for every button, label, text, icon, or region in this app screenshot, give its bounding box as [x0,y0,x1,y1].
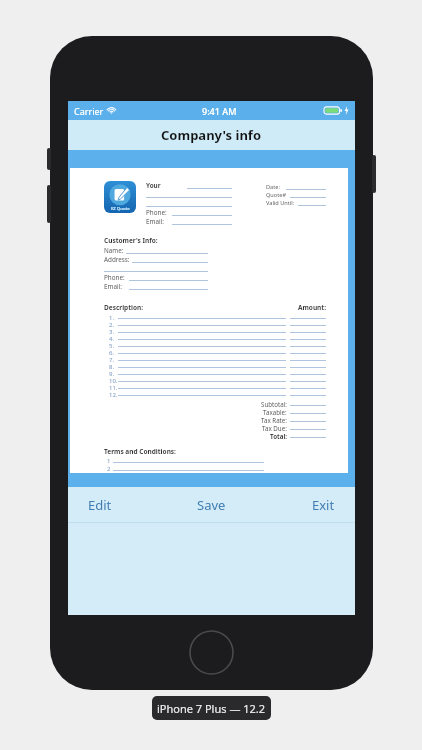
staticText: 2. [109,321,115,328]
staticText: Customer's Info: [104,236,158,245]
staticText: EZ Quote [111,206,130,212]
staticText: Tax Rate: [261,416,287,424]
staticText: 2 [107,465,111,473]
staticText: Name: [104,246,124,255]
button[interactable]: Edit [68,487,163,523]
staticText: Tax Due: [262,424,287,432]
staticText: Email: [104,282,122,291]
staticText: Save [197,496,226,514]
staticText: Taxable: [263,408,287,416]
staticText: Exit [312,496,335,514]
button[interactable]: Exit [259,487,355,523]
staticText: 12. [109,391,118,398]
staticText: Total: [270,432,287,440]
staticText: Phone: [104,273,125,282]
staticText: 4. [109,335,115,342]
staticText: Company's info [161,126,262,144]
staticText: 10. [109,377,118,384]
staticText: 3. [109,328,115,335]
staticText: Valid Until: [266,199,295,207]
staticText: 5. [109,342,115,349]
staticText: Description: [104,303,144,312]
staticText: Subtotal: [261,400,287,408]
button[interactable]: Home [189,630,234,675]
staticText: 8. [109,363,115,370]
staticText: Email: [146,217,164,226]
staticText: iPhone 7 Plus — 12.2 [157,701,266,716]
staticText: 6. [109,349,115,356]
staticText: Edit [88,496,112,514]
staticText: 11. [109,384,118,391]
button[interactable]: Save [163,487,259,523]
staticText: Phone: [146,208,167,217]
staticText: Amount: [298,303,326,312]
staticText: 7. [109,356,115,363]
staticText: 9:41 AM [202,105,237,117]
staticText: 1 [107,457,111,465]
staticText: Terms and Conditions: [104,447,176,456]
staticText: Your Company [146,181,187,190]
staticText: Address: [104,255,130,264]
staticText: 1. [109,314,115,321]
staticText: Quote# [266,191,286,199]
staticText: Carrier [74,105,104,117]
staticText: 9. [109,370,115,377]
staticText: Date: [266,183,280,191]
button[interactable]: EZ Quote app icon [104,181,136,213]
